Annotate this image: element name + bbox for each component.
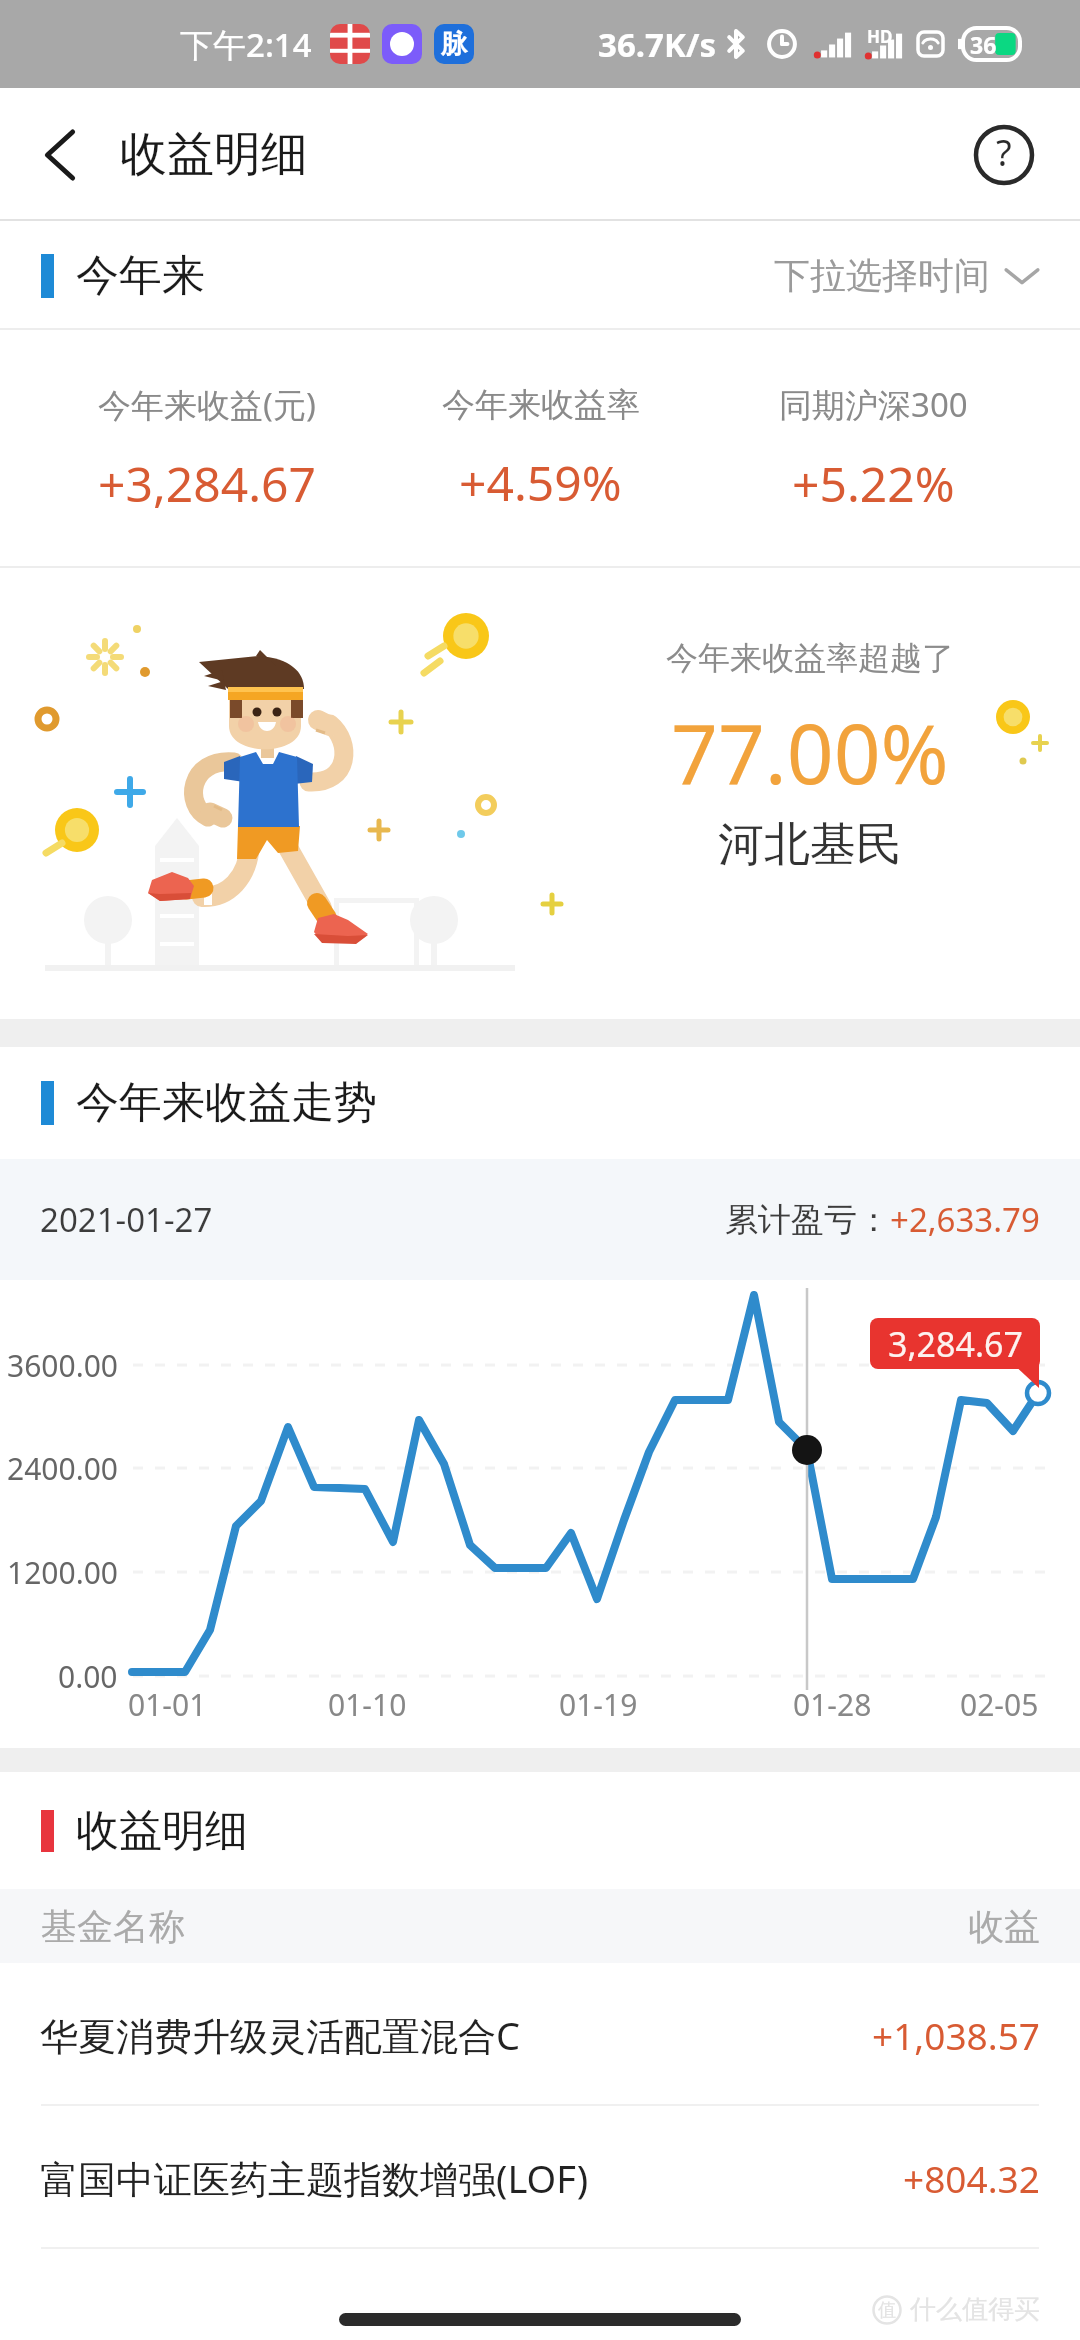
staticText: 华夏消费升级灵活配置混合C xyxy=(40,2009,521,2061)
staticText: HD xyxy=(867,25,893,48)
staticText: +4.59% xyxy=(459,450,622,515)
staticText: 今年来收益率超越了 xyxy=(666,638,954,678)
staticText: +804.32 xyxy=(903,2153,1040,2203)
staticText: 01-01 xyxy=(128,1684,207,1725)
staticText: 下拉选择时间 xyxy=(774,253,990,298)
staticText: 什么值得买 xyxy=(910,2293,1040,2326)
staticText: 2021-01-27 xyxy=(40,1197,213,1242)
staticText: 3,284.67 xyxy=(888,1321,1023,1367)
staticText: 脉 xyxy=(441,28,467,61)
staticText: 36 xyxy=(970,29,997,60)
staticText: 77.00% xyxy=(671,696,949,808)
staticText: +3,284.67 xyxy=(98,451,316,516)
staticText: 今年来收益走势 xyxy=(76,1076,377,1130)
staticText: 基金名称 xyxy=(41,1904,185,1949)
staticText: 下午2:14 xyxy=(180,22,312,67)
staticText: 今年来收益(元) xyxy=(98,382,316,427)
button[interactable]: Back xyxy=(0,88,120,221)
staticText: 0.00 xyxy=(58,1656,118,1697)
staticText: +5.22% xyxy=(792,451,955,516)
button[interactable]: 下拉选择时间 xyxy=(774,239,1040,312)
staticText: +2,633.79 xyxy=(890,1197,1040,1242)
staticText: 02-05 xyxy=(960,1684,1039,1725)
staticText: 3600.00 xyxy=(7,1345,118,1386)
staticText: 河北基民 xyxy=(718,816,902,874)
staticText: 收益明细 xyxy=(120,125,308,184)
button[interactable]: Help xyxy=(944,88,1064,221)
staticText: 值 xyxy=(878,2299,896,2322)
staticText: 同期沪深300 xyxy=(779,382,968,427)
staticText: 2400.00 xyxy=(7,1448,118,1489)
button[interactable]: 华夏消费升级灵活配置混合C xyxy=(0,1963,1080,2106)
staticText: 1200.00 xyxy=(7,1552,118,1593)
staticText: 累计盈亏： xyxy=(725,1199,890,1241)
staticText: 01-10 xyxy=(328,1684,407,1725)
staticText: 36.7K/s xyxy=(598,22,717,67)
staticText: 收益明细 xyxy=(76,1804,248,1858)
staticText: ? xyxy=(996,128,1012,177)
staticText: 今年来 xyxy=(76,249,205,303)
staticText: 01-19 xyxy=(559,1684,638,1725)
button[interactable]: 富国中证医药主题指数增强(LOF) xyxy=(0,2106,1080,2249)
staticText: +1,038.57 xyxy=(872,2010,1040,2060)
staticText: 收益 xyxy=(968,1904,1040,1949)
staticText: 今年来收益率 xyxy=(442,384,640,426)
staticText: 01-28 xyxy=(793,1684,872,1725)
staticText: 富国中证医药主题指数增强(LOF) xyxy=(40,2152,589,2204)
